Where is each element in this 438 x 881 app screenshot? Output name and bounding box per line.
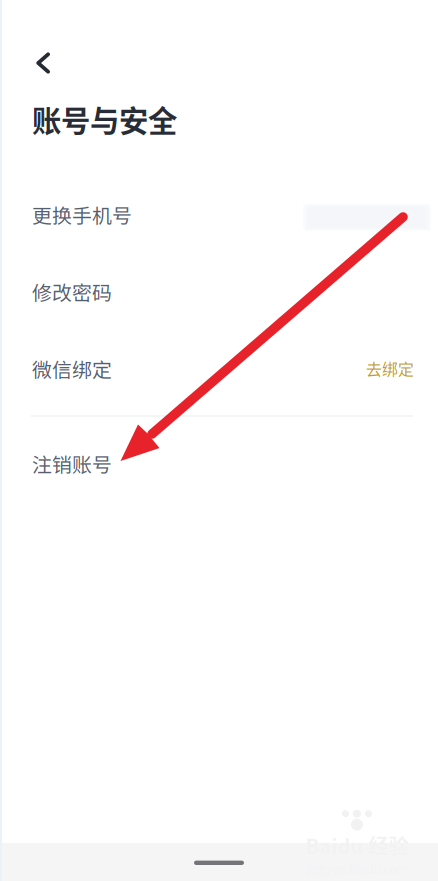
button[interactable]: 更换手机号	[0, 176, 438, 253]
staticText: 注销账号	[32, 449, 112, 478]
button[interactable]: 微信绑定	[0, 330, 438, 407]
button[interactable]: 修改密码	[0, 253, 438, 330]
staticText: Baidu 经验	[305, 831, 408, 860]
staticText: 去绑定	[366, 357, 414, 380]
staticText: 修改密码	[32, 277, 112, 306]
button[interactable]: Back	[0, 41, 92, 85]
staticText: 更换手机号	[32, 200, 132, 229]
staticText: 账号与安全	[32, 98, 177, 140]
staticText: 微信绑定	[32, 354, 112, 383]
button[interactable]: 注销账号	[0, 419, 438, 508]
